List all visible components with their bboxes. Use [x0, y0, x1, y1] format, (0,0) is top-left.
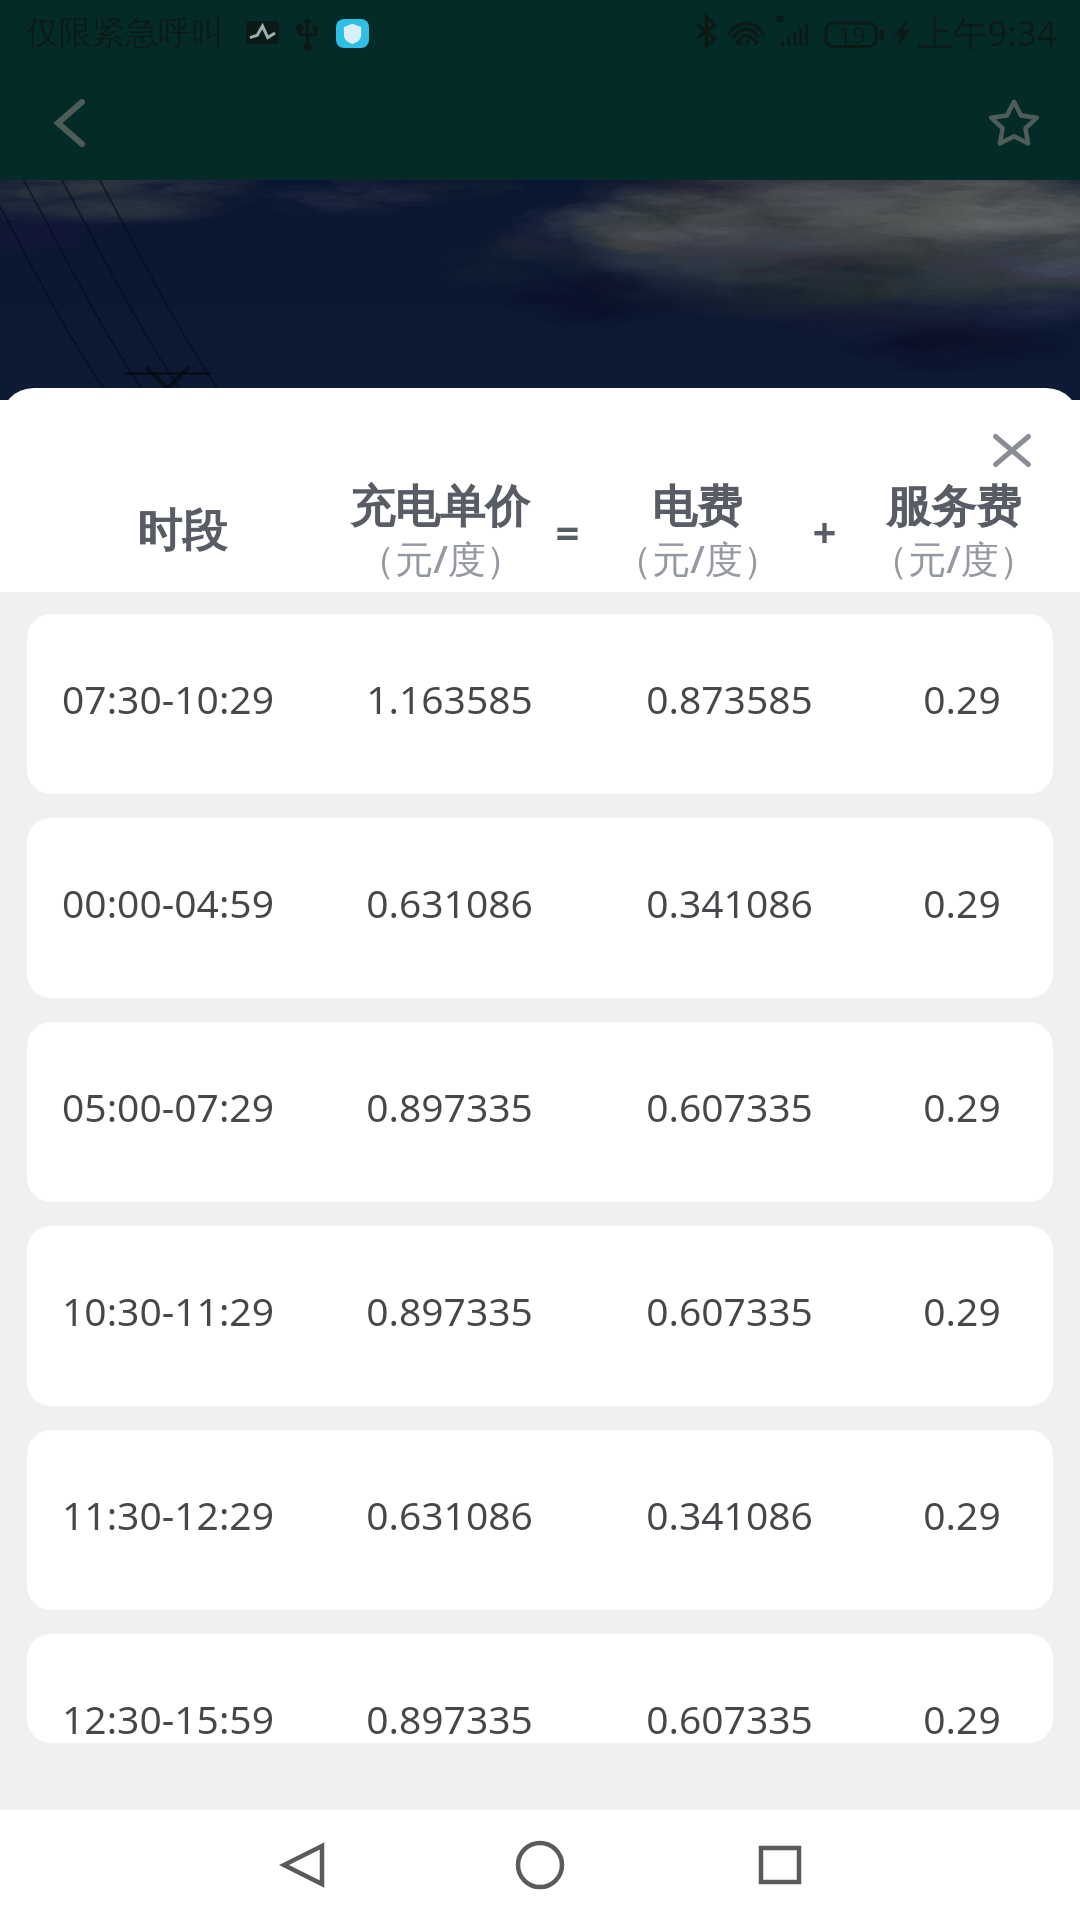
staticText: 0.29: [923, 1284, 1001, 1337]
staticText: 上午9:34: [917, 9, 1057, 57]
staticText: +: [812, 503, 837, 560]
button[interactable]: 12:30-15:59: [27, 1634, 1053, 1743]
staticText: （元/度）: [357, 532, 524, 584]
staticText: 0.29: [923, 1692, 1001, 1743]
button[interactable]: 07:30-10:29: [27, 614, 1053, 794]
button[interactable]: Back: [223, 1810, 383, 1920]
staticText: 服务费: [886, 479, 1021, 536]
staticText: 0.873585: [646, 672, 813, 725]
staticText: 0.607335: [646, 1284, 813, 1337]
staticText: 0.897335: [366, 1284, 533, 1337]
staticText: 10:30-11:29: [62, 1284, 274, 1337]
button[interactable]: 11:30-12:29: [27, 1430, 1053, 1610]
staticText: =: [555, 503, 580, 560]
staticText: 0.607335: [646, 1692, 813, 1743]
staticText: 0.29: [923, 876, 1001, 929]
staticText: 0.29: [923, 672, 1001, 725]
staticText: 05:00-07:29: [62, 1080, 274, 1133]
button[interactable]: 10:30-11:29: [27, 1226, 1053, 1406]
staticText: 时段: [137, 503, 227, 560]
staticText: 0.341086: [646, 1488, 813, 1541]
staticText: 0.897335: [366, 1692, 533, 1743]
staticText: 0.29: [923, 1080, 1001, 1133]
staticText: 0.607335: [646, 1080, 813, 1133]
button[interactable]: 00:00-04:59: [27, 818, 1053, 998]
staticText: 充电单价: [350, 479, 530, 536]
staticText: 11:30-12:29: [62, 1488, 274, 1541]
staticText: 07:30-10:29: [62, 672, 274, 725]
staticText: （元/度）: [614, 532, 781, 584]
staticText: （元/度）: [870, 532, 1037, 584]
staticText: 0.897335: [366, 1080, 533, 1133]
staticText: 12:30-15:59: [62, 1692, 274, 1743]
button[interactable]: Favorite: [970, 79, 1058, 167]
staticText: 19: [838, 18, 866, 51]
button[interactable]: Recents: [700, 1810, 860, 1920]
staticText: 0.29: [923, 1488, 1001, 1541]
staticText: 0.631086: [366, 1488, 533, 1541]
staticText: 仅限紧急呼叫: [26, 12, 224, 54]
staticText: 0.631086: [366, 876, 533, 929]
staticText: 电费: [652, 479, 742, 536]
button[interactable]: Close: [967, 405, 1057, 495]
staticText: 0.341086: [646, 876, 813, 929]
staticText: 00:00-04:59: [62, 876, 274, 929]
button[interactable]: 05:00-07:29: [27, 1022, 1053, 1202]
staticText: 1.163585: [366, 672, 533, 725]
button[interactable]: Home: [460, 1810, 620, 1920]
button[interactable]: Back: [26, 79, 114, 167]
